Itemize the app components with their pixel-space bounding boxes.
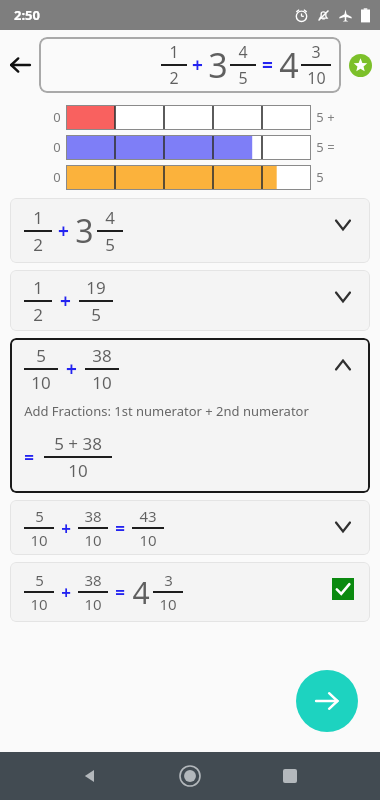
button[interactable]: 1 [10,198,370,263]
staticText: 10 [84,530,102,550]
staticText: 10 [159,594,177,614]
staticText: 38 [84,570,102,590]
staticText: 3 [311,41,321,63]
staticText: 10 [30,530,48,550]
staticText: + [66,356,77,382]
button[interactable]: Home [170,756,210,796]
staticText: = [24,446,34,469]
staticText: 2 [33,303,43,326]
staticText: 5 [36,344,46,367]
staticText: 43 [139,506,157,526]
staticText: 5 [316,168,324,186]
button[interactable]: Favorite [341,30,380,100]
staticText: 4 [105,206,115,229]
staticText: 4 [132,572,150,613]
button[interactable]: Back [70,756,110,796]
staticText: Add Fractions: 1st numerator + 2nd numer… [24,402,309,420]
staticText: 5 [105,233,115,256]
staticText: 19 [86,276,106,299]
staticText: 5 = [316,138,335,156]
staticText: 10 [30,594,48,614]
staticText: 3 [164,570,173,590]
staticText: 3 [208,42,228,88]
staticText: 2:50 [14,6,40,24]
staticText: + [61,581,71,604]
staticText: 10 [92,371,112,394]
staticText: 10 [84,594,102,614]
staticText: 1 [33,276,43,299]
staticText: 2 [33,233,43,256]
staticText: 5 [35,570,44,590]
button[interactable]: Recents [270,756,310,796]
staticText: 10 [139,530,157,550]
staticText: 1 [169,41,179,63]
button[interactable]: 5 [10,500,370,555]
button[interactable]: 1 [10,270,370,331]
staticText: 5 [35,506,44,526]
staticText: 0 [48,168,66,186]
staticText: + [192,52,203,78]
staticText: 3 [75,209,94,253]
staticText: + [58,218,69,244]
button[interactable]: Next [296,670,358,732]
staticText: 10 [31,371,51,394]
staticText: 38 [92,344,112,367]
staticText: 0 [48,108,66,126]
staticText: + [60,288,71,314]
staticText: 4 [238,41,248,63]
staticText: = [115,517,125,540]
staticText: 10 [307,67,326,89]
staticText: + [61,517,71,540]
staticText: = [115,581,125,604]
staticText: 0 [48,138,66,156]
button[interactable]: 5 [10,562,370,622]
staticText: 38 [84,506,102,526]
staticText: 5 [238,67,248,89]
staticText: 5 [91,303,101,326]
button[interactable]: 1 [39,37,341,93]
staticText: 2 [169,67,179,89]
button[interactable]: Back [0,30,39,100]
staticText: = [262,52,273,78]
staticText: 10 [68,459,88,482]
staticText: 1 [33,206,43,229]
button[interactable]: 5 [10,338,370,493]
staticText: 4 [279,42,299,88]
staticText: 5 + [316,108,335,126]
staticText: 5 + 38 [54,432,102,455]
